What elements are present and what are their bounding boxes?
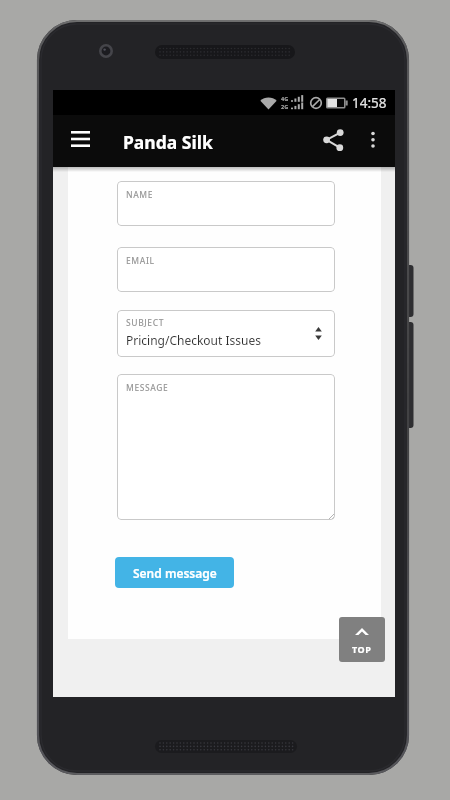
button[interactable]: NAME: [117, 181, 335, 226]
button[interactable]: SUBJECT: [117, 310, 335, 357]
staticText: 2G: [281, 103, 289, 110]
button[interactable]: [358, 124, 388, 158]
button[interactable]: [63, 131, 99, 151]
staticText: TOP: [352, 643, 372, 655]
staticText: Pricing/Checkout Issues: [126, 332, 261, 348]
button[interactable]: Send message: [115, 557, 234, 588]
button[interactable]: EMAIL: [117, 247, 335, 292]
staticText: NAME: [126, 189, 154, 201]
button[interactable]: [311, 124, 351, 158]
staticText: Panda Silk: [123, 130, 213, 154]
staticText: MESSAGE: [126, 382, 169, 394]
staticText: EMAIL: [126, 255, 155, 267]
button[interactable]: TOP: [339, 617, 385, 662]
button[interactable]: MESSAGE: [117, 374, 335, 520]
staticText: Send message: [133, 565, 217, 581]
staticText: 14:58: [352, 94, 387, 112]
staticText: 4G: [281, 95, 289, 102]
staticText: SUBJECT: [126, 317, 165, 329]
